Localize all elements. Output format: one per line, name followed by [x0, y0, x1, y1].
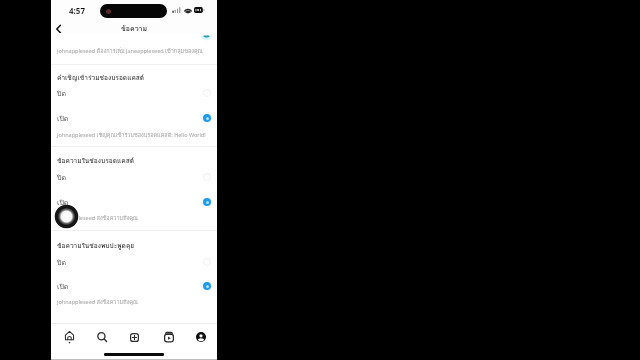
- button[interactable]: Home: [58, 327, 81, 347]
- button[interactable]: Profile: [189, 327, 212, 347]
- staticText: ปิด: [57, 257, 66, 268]
- button[interactable]: ปิด: [51, 253, 217, 271]
- staticText: ข้อความ: [121, 23, 148, 34]
- staticText: ปิด: [57, 88, 66, 99]
- staticText: เปิด: [57, 281, 69, 292]
- button[interactable]: เปิด: [51, 193, 217, 211]
- staticText: ข้อความในช่องบรอดแคสต์: [57, 155, 134, 165]
- staticText: johnappleseed ส่งข้อความถึงคุณ: [57, 214, 138, 223]
- staticText: johnappleseed ต้องการเพิ่ม janeappleseed…: [57, 47, 203, 56]
- staticText: johnappleseed ส่งข้อความถึงคุณ: [57, 298, 138, 307]
- staticText: ปิด: [57, 172, 66, 183]
- button[interactable]: เปิด: [51, 109, 217, 127]
- button[interactable]: Create: [123, 327, 146, 347]
- staticText: 4:57: [69, 5, 85, 16]
- staticText: johnappleseed เชิญคุณเข้าร่วมช่องบรอดแคส…: [57, 131, 206, 140]
- staticText: คำเชิญเข้าร่วมช่องบรอดแคสต์: [57, 72, 145, 82]
- button[interactable]: Back: [50, 20, 67, 37]
- button[interactable]: ปิด: [51, 84, 217, 102]
- button[interactable]: ปิด: [51, 168, 217, 186]
- button[interactable]: Search: [90, 327, 113, 347]
- staticText: เปิด: [57, 197, 69, 208]
- button[interactable]: Reels: [157, 327, 180, 347]
- staticText: ข้อความในช่องพบปะพูดคุย: [57, 240, 135, 250]
- button[interactable]: เปิด: [51, 277, 217, 295]
- staticText: เปิด: [57, 113, 69, 124]
